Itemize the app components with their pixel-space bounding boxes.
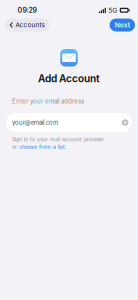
staticText: choose from a list. (19, 143, 67, 150)
staticText: Accounts (15, 21, 44, 29)
button[interactable]: Accounts (5, 18, 50, 31)
staticText: Sign in to your mail account provider (12, 136, 104, 142)
staticText: or (12, 143, 19, 150)
button[interactable]: or (6, 142, 67, 150)
staticText: 09:29 (17, 6, 36, 14)
staticText: Enter your email address (12, 98, 84, 105)
staticText: Next (115, 21, 130, 29)
button[interactable]: Next (110, 18, 135, 31)
button[interactable]: Clear text (121, 119, 129, 126)
staticText: 5G (108, 6, 117, 14)
staticText: your@email.com (12, 119, 58, 126)
staticText: Add Account (38, 72, 100, 85)
